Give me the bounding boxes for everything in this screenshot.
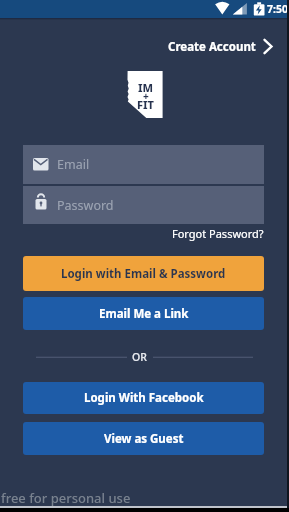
staticText: free for personal use xyxy=(1,489,131,507)
button[interactable]: Email xyxy=(23,145,264,184)
button[interactable]: Email Me a Link xyxy=(23,297,264,330)
staticText: + xyxy=(143,89,149,100)
button[interactable]: Create Account xyxy=(168,38,273,55)
button[interactable]: Login With Facebook xyxy=(23,382,264,414)
staticText: 7:50 xyxy=(267,2,288,16)
staticText: IM xyxy=(138,80,154,93)
staticText: Login with Email & Password xyxy=(61,266,226,282)
staticText: Login With Facebook xyxy=(84,390,204,406)
staticText: OR xyxy=(132,350,147,363)
button[interactable]: Password xyxy=(23,186,264,224)
staticText: FIT xyxy=(137,97,154,110)
staticText: Email Me a Link xyxy=(99,306,189,322)
staticText: Password xyxy=(57,197,114,214)
staticText: Create Account xyxy=(168,39,256,55)
button[interactable]: View as Guest xyxy=(23,422,264,455)
staticText: View as Guest xyxy=(104,431,184,447)
button[interactable]: Forgot Password? xyxy=(172,226,264,241)
button[interactable]: Login with Email & Password xyxy=(23,256,264,291)
staticText: Email xyxy=(57,156,90,173)
